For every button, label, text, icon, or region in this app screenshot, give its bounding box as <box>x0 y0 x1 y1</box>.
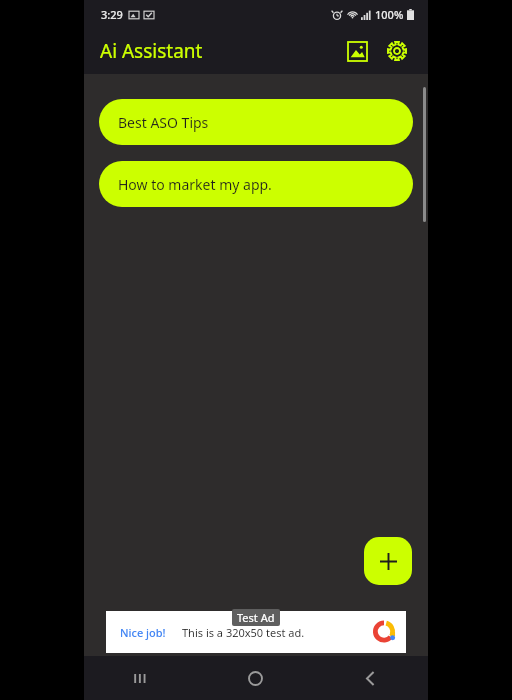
button[interactable]: Best ASO Tips <box>99 99 413 145</box>
staticText: How to market my app. <box>118 175 272 194</box>
staticText: 3:29 <box>101 7 123 22</box>
button[interactable]: Back <box>313 656 428 700</box>
staticText: 100% <box>375 7 404 22</box>
button[interactable]: Home <box>198 656 313 700</box>
staticText: Nice job! <box>120 625 166 640</box>
button[interactable]: Recents <box>84 656 198 700</box>
staticText: Ai Assistant <box>100 38 203 64</box>
staticText: Test Ad <box>237 610 275 625</box>
button[interactable]: New chat <box>364 537 412 585</box>
staticText: This is a 320x50 test ad. <box>182 625 305 640</box>
button[interactable]: Settings <box>380 34 414 68</box>
button[interactable]: Nice job! <box>106 611 406 653</box>
staticText: Best ASO Tips <box>118 113 209 132</box>
button[interactable]: How to market my app. <box>99 161 413 207</box>
button[interactable]: Images <box>340 34 374 68</box>
